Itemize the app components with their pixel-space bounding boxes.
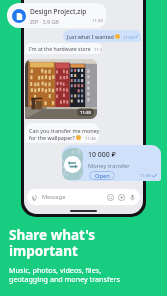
staticText: 11:35 xyxy=(80,109,91,115)
staticText: 11:35 xyxy=(94,46,102,52)
staticText: Music, photos, videos, files, geotagging… xyxy=(9,265,120,285)
staticText: ZIP · 3,9 GB xyxy=(30,18,59,25)
staticText: Message xyxy=(42,193,66,201)
staticText: 11:30 xyxy=(92,17,103,23)
staticText: Can you transfer me money xyxy=(29,127,99,134)
button[interactable]: Can you transfer me money xyxy=(25,123,99,143)
button[interactable]: Design Project.zip xyxy=(7,3,106,28)
button[interactable]: I'm at the hardware store xyxy=(25,43,102,54)
staticText: Money transfer xyxy=(88,162,130,170)
staticText: 11:32 xyxy=(123,34,134,40)
staticText: for the wallpaper? xyxy=(29,134,75,141)
button[interactable]: 11:35 xyxy=(25,59,97,119)
other: Stickers xyxy=(118,194,125,201)
button[interactable]: Just what I wanted xyxy=(63,30,141,42)
staticText: 10 000 ₽ xyxy=(88,150,116,160)
button[interactable]: Attach file xyxy=(27,189,140,205)
staticText: I'm at the hardware store xyxy=(29,45,91,52)
staticText: 11:36 xyxy=(140,172,151,178)
other: Attach file xyxy=(31,194,38,201)
button[interactable]: Open xyxy=(89,171,115,180)
other: Voice message xyxy=(129,194,136,201)
other: Emoji xyxy=(107,194,114,201)
staticText: 11:46 xyxy=(85,135,96,141)
button[interactable]: 10 000 ₽ xyxy=(62,145,161,181)
staticText: Open xyxy=(95,172,110,180)
staticText: Share what's important xyxy=(9,226,96,260)
staticText: Design Project.zip xyxy=(30,7,87,16)
staticText: Just what I wanted xyxy=(67,33,114,40)
